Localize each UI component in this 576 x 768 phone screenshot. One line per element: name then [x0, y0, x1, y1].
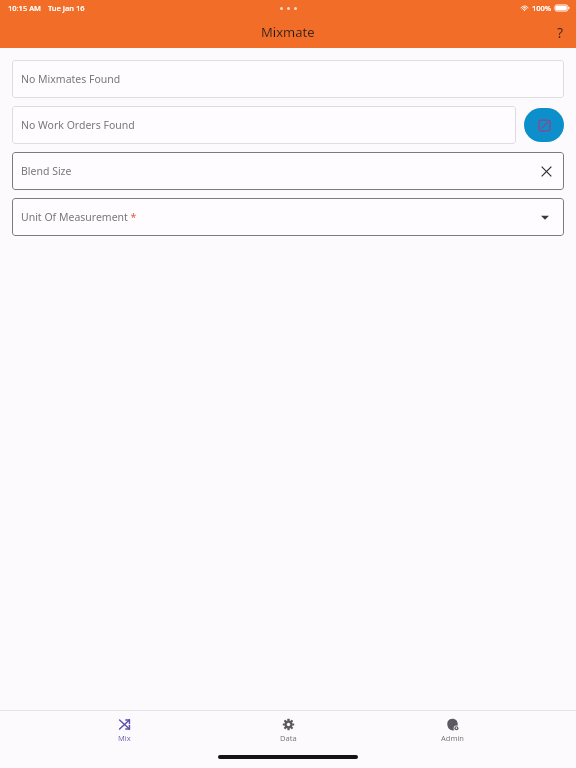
staticText: Unit Of Measurement * [21, 210, 137, 224]
button[interactable]: No Mixmates Found [12, 60, 564, 98]
staticText: Tue Jan 16 [48, 3, 85, 13]
button[interactable]: Clear blend size [534, 159, 558, 183]
staticText: No Work Orders Found [21, 118, 135, 132]
staticText: Mix [118, 733, 131, 743]
button[interactable]: Data [248, 710, 328, 750]
button[interactable]: Open unit of measurement list [534, 206, 556, 228]
staticText: 100% [532, 3, 552, 13]
staticText: Blend Size [21, 164, 72, 178]
staticText: No Mixmates Found [21, 72, 121, 86]
staticText: ? [557, 23, 564, 42]
staticText: Admin [441, 733, 464, 743]
button[interactable]: Admin [412, 710, 492, 750]
button[interactable]: Help [544, 16, 576, 48]
staticText: Data [280, 733, 297, 743]
staticText: Mixmate [261, 23, 315, 41]
button[interactable]: Create work order [524, 108, 564, 142]
button[interactable]: No Work Orders Found [12, 106, 516, 144]
button[interactable]: Blend Size [12, 152, 564, 190]
staticText: 10:15 AM [8, 3, 41, 13]
button[interactable]: Unit Of Measurement * [12, 198, 564, 236]
button[interactable]: Mix [84, 710, 164, 750]
